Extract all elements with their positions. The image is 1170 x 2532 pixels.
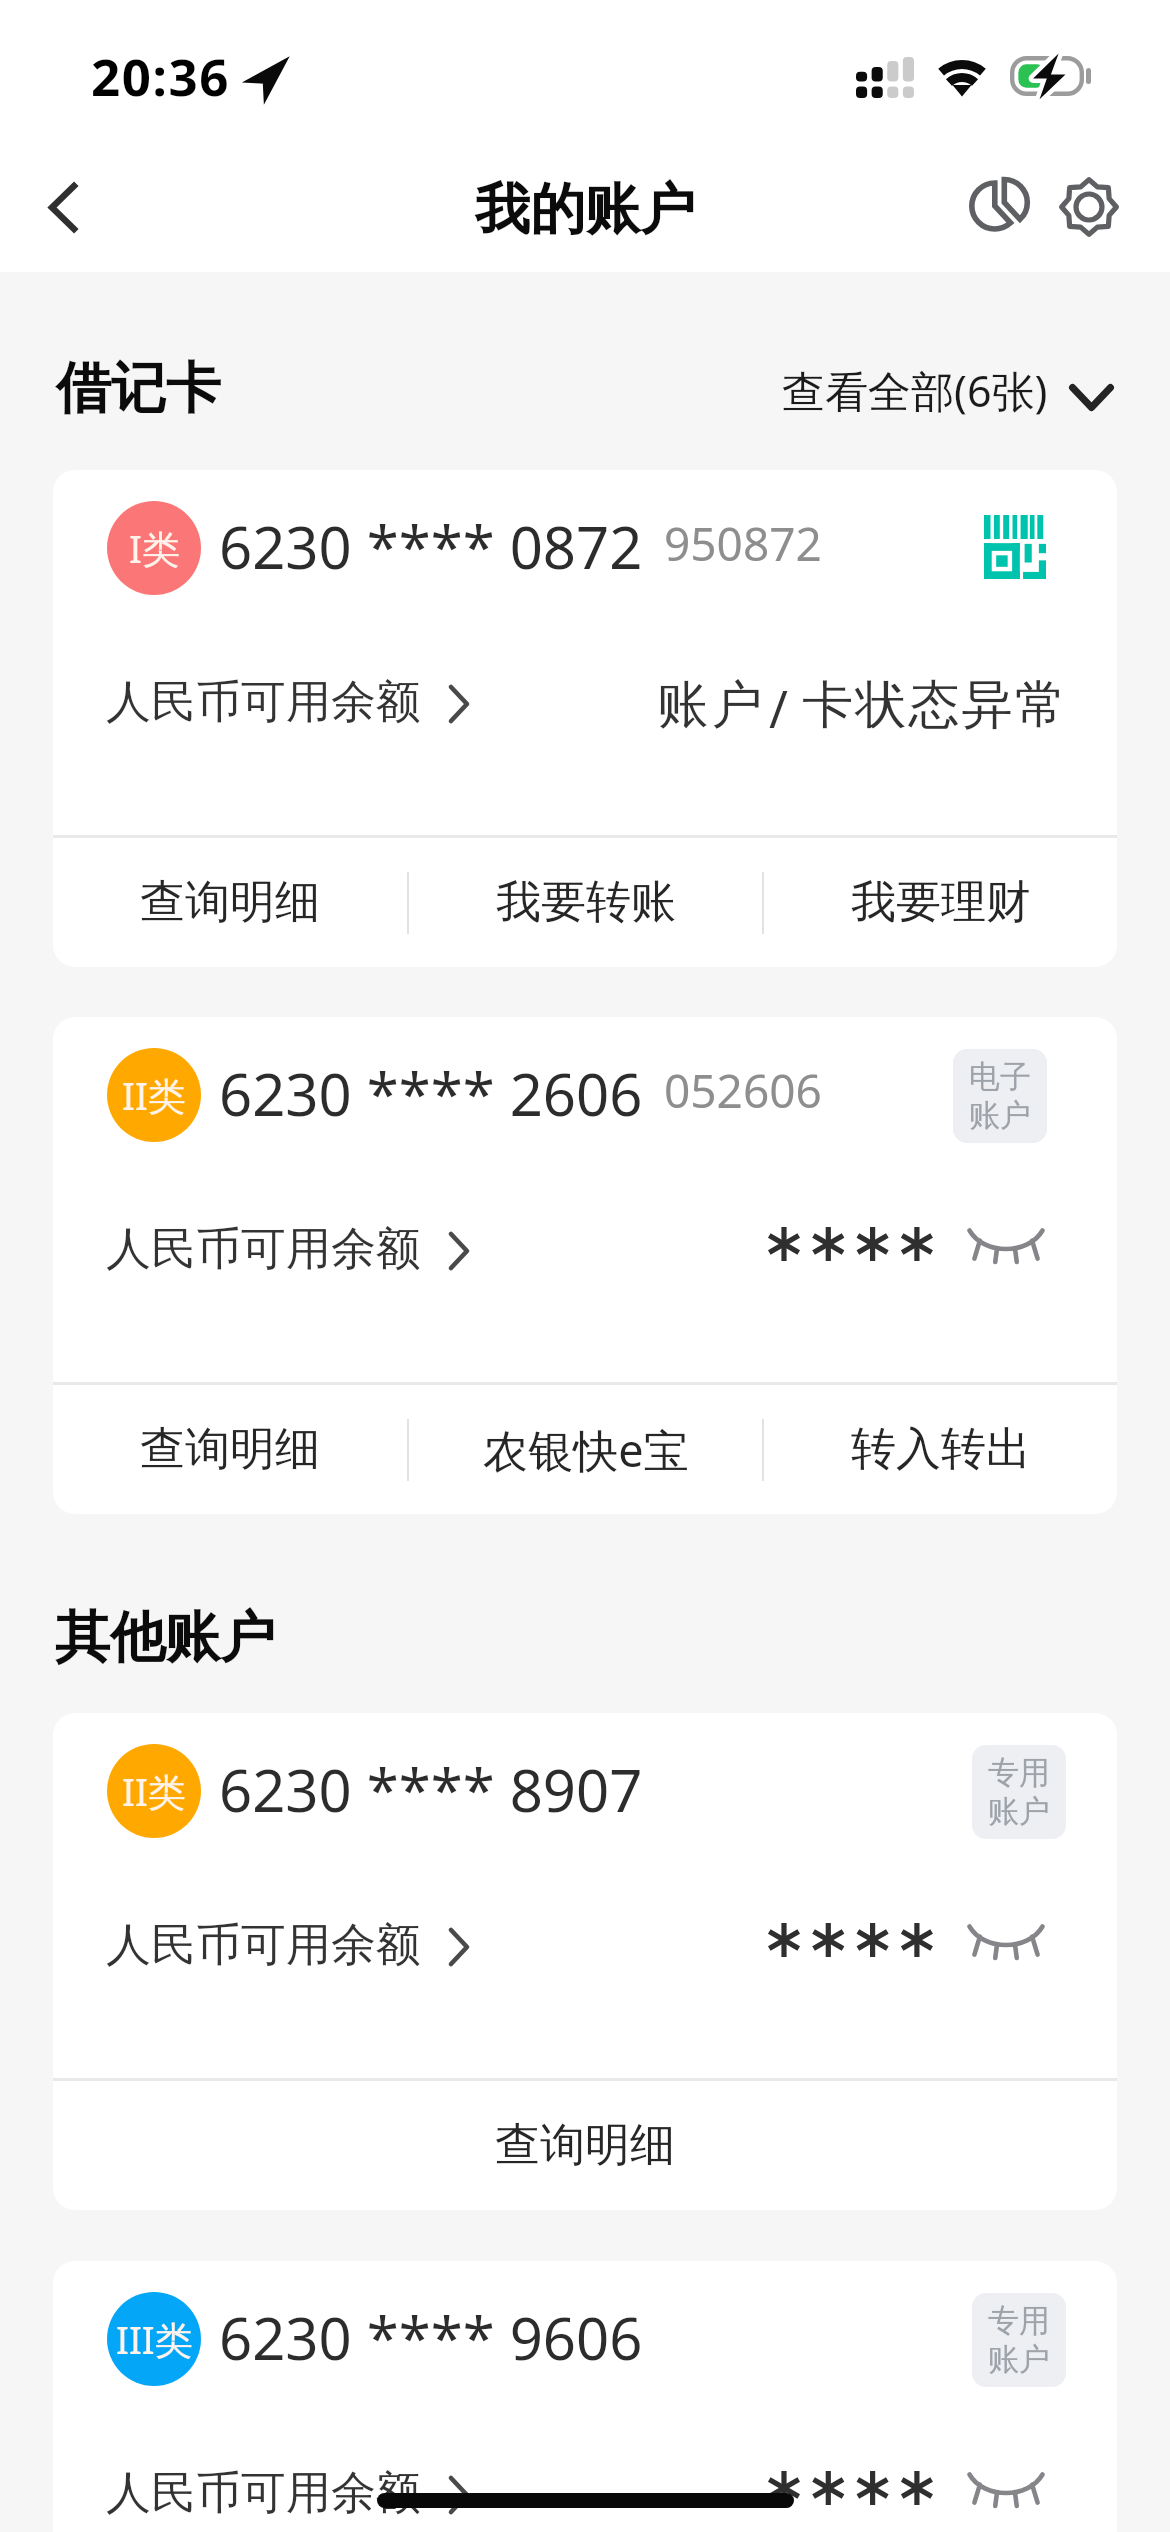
button[interactable]: 我要转账 — [409, 838, 762, 967]
button[interactable]: 我要理财 — [764, 838, 1117, 967]
button[interactable]: 专用 — [972, 1745, 1066, 1839]
staticText: 我要理财 — [851, 874, 1031, 931]
button[interactable]: II类 — [53, 1017, 1117, 1514]
staticText: 账户 — [988, 2340, 1050, 2379]
staticText: 052606 — [664, 1059, 822, 1122]
button[interactable]: Scan payment code — [963, 492, 1067, 602]
button[interactable]: 电子 — [953, 1049, 1047, 1143]
button[interactable]: Show balance — [955, 2453, 1057, 2525]
button[interactable]: II类 — [53, 1713, 1117, 2210]
button[interactable]: Back — [3, 147, 123, 267]
button[interactable]: 查看全部(6张) — [782, 361, 1114, 420]
staticText: 专用 — [988, 2301, 1050, 2340]
staticText: 查询明细 — [495, 2117, 675, 2174]
staticText: III类 — [116, 2313, 193, 2365]
button[interactable]: 查询明细 — [53, 838, 407, 967]
staticText: 人民币可用余额 — [106, 2465, 421, 2522]
button[interactable]: 查询明细 — [53, 2081, 1117, 2210]
staticText: 20:36 — [91, 41, 231, 110]
button[interactable]: 专用 — [972, 2293, 1066, 2387]
staticText: / — [769, 673, 788, 742]
button[interactable]: 农银快e宝 — [409, 1385, 762, 1514]
staticText: 人民币可用余额 — [106, 1221, 421, 1278]
staticText: 卡状态异常 — [801, 673, 1067, 737]
staticText: 人民币可用余额 — [106, 674, 421, 731]
staticText: II类 — [122, 1069, 186, 1121]
staticText: 我要转账 — [496, 874, 676, 931]
staticText: 专用 — [988, 1753, 1050, 1792]
button[interactable]: 人民币可用余额 — [106, 2465, 470, 2522]
staticText: 6230 **** 8907 — [219, 1750, 643, 1829]
staticText: 账户 — [656, 673, 764, 737]
staticText: 电子 — [969, 1057, 1031, 1096]
staticText: 农银快e宝 — [483, 1419, 689, 1480]
button[interactable]: Assets chart — [946, 156, 1046, 256]
button[interactable]: III类 — [53, 2261, 1117, 2532]
button[interactable]: I类 — [53, 470, 1117, 967]
staticText: 人民币可用余额 — [106, 1917, 421, 1974]
staticText: 转入转出 — [851, 1421, 1031, 1478]
staticText: II类 — [122, 1765, 186, 1817]
button[interactable]: Show balance — [955, 1905, 1057, 1977]
staticText: 我的账户 — [475, 175, 695, 244]
button[interactable]: Settings — [1039, 157, 1139, 257]
staticText: 其他账户 — [55, 1603, 275, 1672]
staticText: 查询明细 — [140, 1421, 320, 1478]
button[interactable]: 查询明细 — [53, 1385, 407, 1514]
button[interactable]: 转入转出 — [764, 1385, 1117, 1514]
staticText: 账户 — [969, 1096, 1031, 1135]
staticText: I类 — [129, 522, 180, 574]
staticText: 借记卡 — [56, 354, 221, 423]
button[interactable]: 人民币可用余额 — [106, 1917, 470, 1974]
staticText: 账户 — [988, 1792, 1050, 1831]
staticText: 950872 — [664, 512, 822, 575]
staticText: 查询明细 — [140, 874, 320, 931]
staticText: 6230 **** 2606 — [219, 1054, 643, 1133]
button[interactable]: Show balance — [955, 1209, 1057, 1281]
button[interactable]: 人民币可用余额 — [106, 1221, 470, 1278]
staticText: 6230 **** 0872 — [219, 507, 643, 586]
staticText: 查看全部(6张) — [782, 361, 1048, 420]
button[interactable]: 人民币可用余额 — [106, 674, 470, 731]
staticText: 6230 **** 9606 — [219, 2298, 643, 2377]
